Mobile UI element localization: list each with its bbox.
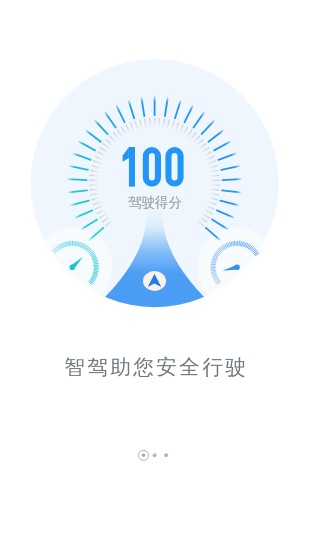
staticText: 驾驶得分 <box>128 194 182 211</box>
button[interactable]: Page indicator <box>133 445 177 466</box>
staticText: 智驾助您安全行驶 <box>63 354 247 380</box>
